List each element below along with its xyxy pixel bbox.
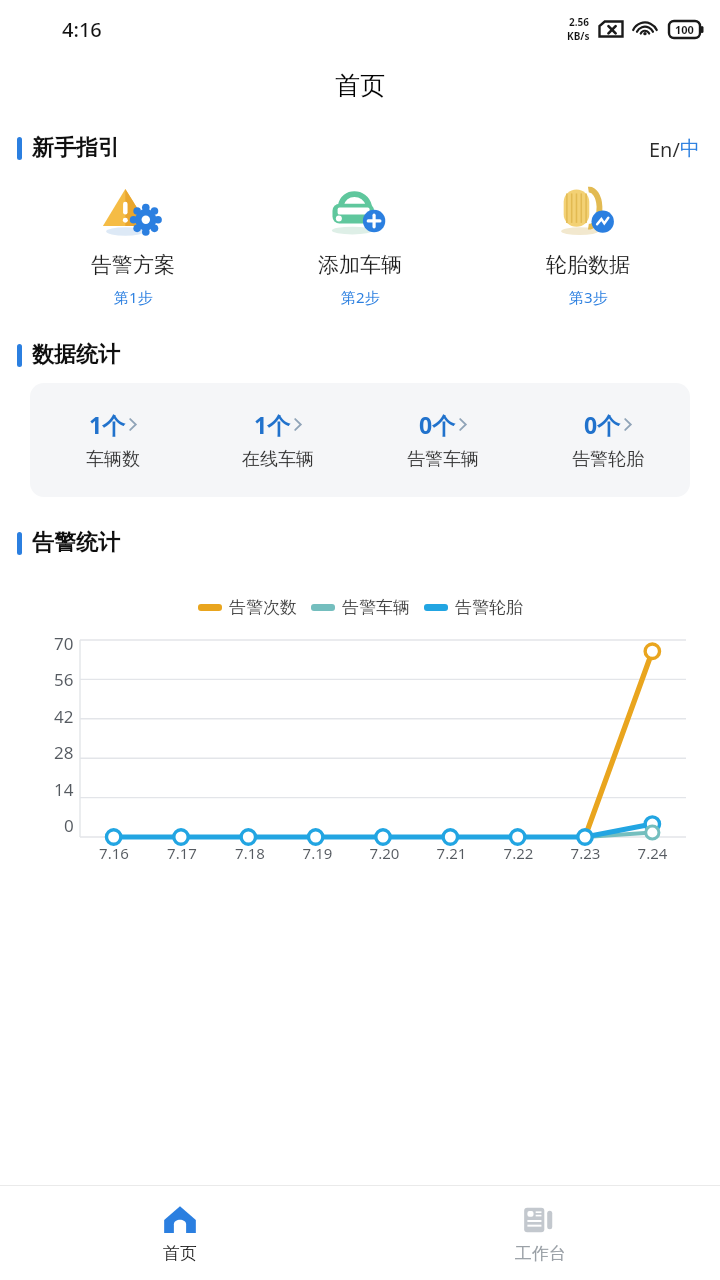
button[interactable]: 添加车辆 bbox=[265, 176, 455, 311]
staticText: 2.56 bbox=[569, 15, 589, 29]
staticText: 告警轮胎 bbox=[572, 448, 644, 471]
staticText: 0 bbox=[64, 814, 74, 837]
staticText: 14 bbox=[54, 778, 74, 801]
staticText: 0个 bbox=[419, 409, 456, 440]
staticText: 中 bbox=[680, 136, 700, 160]
button[interactable]: 1个 bbox=[195, 407, 360, 473]
button[interactable]: 工作台 bbox=[360, 1186, 720, 1280]
staticText: 告警次数 bbox=[229, 597, 297, 618]
button[interactable]: 告警方案 bbox=[38, 176, 228, 311]
staticText: 42 bbox=[54, 705, 74, 728]
staticText: 70 bbox=[54, 632, 74, 655]
staticText: 首页 bbox=[163, 1243, 197, 1264]
button[interactable]: 首页 bbox=[0, 1186, 360, 1280]
staticText: 告警统计 bbox=[32, 529, 120, 557]
staticText: 数据统计 bbox=[32, 341, 120, 369]
staticText: 1个 bbox=[254, 409, 291, 440]
staticText: 0个 bbox=[584, 409, 621, 440]
staticText: 第2步 bbox=[341, 287, 380, 307]
staticText: 第3步 bbox=[569, 287, 608, 307]
staticText: 28 bbox=[54, 741, 74, 764]
staticText: 7.17 bbox=[148, 843, 216, 863]
staticText: KB/s bbox=[567, 29, 590, 43]
staticText: 1个 bbox=[89, 409, 126, 440]
staticText: 7.19 bbox=[284, 843, 351, 863]
staticText: 7.22 bbox=[485, 843, 552, 863]
staticText: 7.23 bbox=[552, 843, 619, 863]
staticText: 工作台 bbox=[515, 1243, 566, 1264]
staticText: 7.21 bbox=[418, 843, 485, 863]
staticText: 车辆数 bbox=[86, 448, 140, 471]
button[interactable]: En/ bbox=[645, 132, 704, 164]
staticText: 56 bbox=[54, 668, 74, 691]
staticText: 告警方案 bbox=[91, 252, 175, 278]
staticText: 7.20 bbox=[351, 843, 418, 863]
staticText: 在线车辆 bbox=[242, 448, 314, 471]
staticText: 100 bbox=[675, 22, 694, 37]
staticText: 首页 bbox=[335, 70, 385, 101]
staticText: 第1步 bbox=[114, 287, 153, 307]
staticText: 告警轮胎 bbox=[455, 597, 523, 618]
staticText: 告警车辆 bbox=[407, 448, 479, 471]
button[interactable]: 0个 bbox=[525, 407, 690, 473]
staticText: 7.16 bbox=[80, 843, 148, 863]
staticText: 4:16 bbox=[62, 16, 102, 43]
staticText: 轮胎数据 bbox=[546, 252, 630, 278]
staticText: 7.24 bbox=[619, 843, 686, 863]
button[interactable]: 轮胎数据 bbox=[493, 176, 683, 311]
button[interactable]: 0个 bbox=[360, 407, 525, 473]
staticText: 新手指引 bbox=[32, 134, 120, 162]
button[interactable]: 1个 bbox=[30, 407, 195, 473]
staticText: 告警车辆 bbox=[342, 597, 410, 618]
staticText: En/ bbox=[649, 136, 680, 160]
staticText: 7.18 bbox=[216, 843, 284, 863]
staticText: 添加车辆 bbox=[318, 252, 402, 278]
